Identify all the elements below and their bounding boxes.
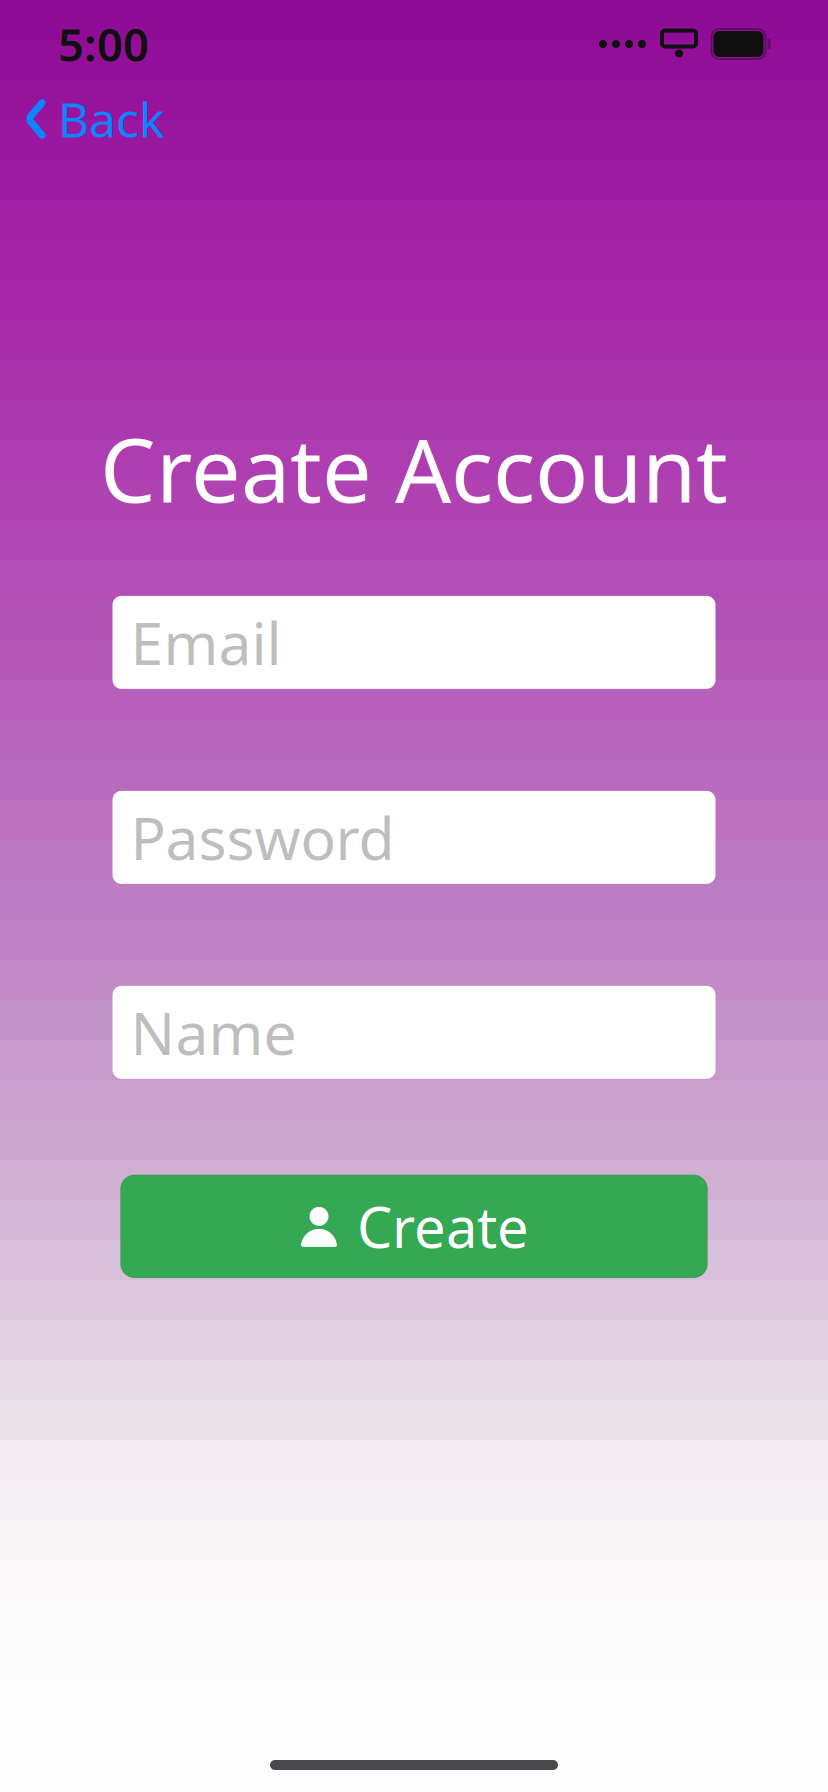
- staticText: Email: [130, 603, 281, 681]
- button[interactable]: Name: [112, 986, 715, 1079]
- button[interactable]: Email: [112, 596, 715, 689]
- staticText: Password: [130, 798, 394, 876]
- staticText: Create Account: [100, 410, 728, 527]
- button[interactable]: Create: [120, 1175, 707, 1278]
- staticText: Name: [130, 993, 296, 1071]
- button[interactable]: Password: [112, 791, 715, 884]
- staticText: Back: [58, 87, 165, 151]
- button[interactable]: Back: [0, 90, 165, 148]
- staticText: Create: [357, 1189, 529, 1264]
- staticText: 5:00: [58, 14, 149, 74]
